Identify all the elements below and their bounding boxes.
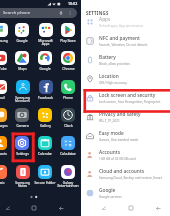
staticText: 10:02 [68,1,78,6]
staticText: Calendar [38,151,52,155]
staticText: Maps [18,66,27,70]
staticText: Lock screen and security [99,92,156,99]
staticText: Samsung Cloud, Backup and restore, Smart [99,176,163,180]
button[interactable]: Phone [57,80,79,103]
staticText: YouTube [0,66,7,70]
staticText: Google [16,38,28,42]
button[interactable]: Gallery [34,108,56,131]
button[interactable]: Google [34,51,56,74]
button[interactable]: Maps [11,51,33,74]
staticText: Phone [63,95,73,99]
button[interactable]: NFC and payment [82,31,170,50]
staticText: Clock [64,123,73,127]
button[interactable]: Home [28,202,40,214]
button[interactable]: Easy mode [82,126,170,145]
staticText: ON / High accuracy [99,81,127,85]
staticText: Lock screen, Face Recognition, Fingerpri… [99,100,161,104]
button[interactable]: Secure Folder [34,165,56,188]
staticText: Sounds, Vibration, Do not disturb [99,43,148,47]
staticText: Samsung Notes [15,180,30,188]
staticText: Location [99,73,119,80]
staticText: Facebook [38,95,53,99]
button[interactable]: Gmail [0,80,11,103]
staticText: Gmail [0,95,5,99]
button[interactable]: Location [82,69,170,88]
button[interactable]: Google [82,183,170,202]
button[interactable]: Camera [11,108,33,131]
button[interactable]: Privacy and safety [82,107,170,126]
staticText: Battery [99,54,116,61]
staticText: Block, allow priorities [99,62,130,66]
button[interactable]: Recents [98,202,110,214]
staticText: Easy mode [99,130,124,137]
button[interactable]: Settings [11,136,33,159]
staticText: Chrome [62,66,75,70]
staticText: Galaxy Entertainment [57,180,79,188]
button[interactable]: Facebook [34,80,56,103]
button[interactable]: Clock [57,108,79,131]
staticText: Secure Folder [34,180,56,184]
staticText: Play Store [60,38,76,42]
button[interactable]: Home [125,202,137,214]
staticText: Gallery [40,123,51,127]
staticText: Cloud and accounts [99,168,145,175]
button[interactable]: Google [11,23,33,46]
staticText: Games, One-handed mode [99,138,139,142]
staticText: NFC and payment [99,35,140,42]
button[interactable]: Chrome [57,51,79,74]
button[interactable]: Samsung Members [11,80,33,103]
button[interactable]: Play Store [57,23,79,46]
button[interactable]: Lock screen and security [82,88,170,107]
staticText: Messages [0,123,8,127]
staticText: Default apps, App permissions [99,24,144,28]
other: Voice search [58,10,64,16]
staticText: Google [99,187,116,194]
button[interactable]: Back [55,202,67,214]
button[interactable]: Galaxy Entertainment [57,165,79,188]
button[interactable]: Calculator [57,136,79,159]
button[interactable]: Microsoft Apps [34,23,56,46]
staticText: Samsung Members [15,95,30,103]
button[interactable]: Back [152,202,164,214]
staticText: Camera [16,123,29,127]
staticText: Apps [99,16,111,23]
staticText: Samsung [0,38,8,42]
staticText: W.L.T_TF_2021 [99,119,120,123]
button[interactable]: Contacts [0,136,11,159]
button[interactable]: Music [0,165,11,188]
button[interactable]: Cloud and accounts [82,164,170,183]
staticText: Google services [99,195,122,199]
button[interactable]: YouTube [0,51,11,74]
staticText: Privacy and safety [99,111,141,118]
staticText: 1.68 GB of 32.98 GB used [99,157,136,161]
button[interactable]: Search phone [0,8,77,18]
staticText: Accounts [99,149,120,156]
button[interactable]: Apps [82,12,170,31]
staticText: Music [0,180,5,184]
staticText: Search phone [3,10,30,16]
staticText: Google [39,66,51,70]
button[interactable]: Battery [82,50,170,69]
button[interactable]: Accounts [82,145,170,164]
button[interactable]: Samsung Notes [11,165,33,188]
staticText: Settings [16,151,29,155]
button[interactable]: Samsung [0,23,11,46]
staticText: Calculator [60,151,76,155]
staticText: Microsoft Apps [38,38,53,46]
staticText: Contacts [0,151,7,155]
button[interactable]: Recents [2,202,14,214]
other: More options [67,10,73,16]
staticText: SETTINGS [86,10,109,16]
button[interactable]: Calendar [34,136,56,159]
button[interactable]: Messages [0,108,11,131]
